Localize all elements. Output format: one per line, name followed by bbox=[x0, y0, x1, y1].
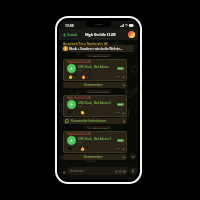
button[interactable]: Kommentare bbox=[63, 82, 127, 88]
button[interactable]: Sprachnachricht aufnehmen bbox=[129, 167, 137, 175]
staticText: 🔥 bbox=[81, 74, 86, 79]
staticText: 283 Abonnent:innen bbox=[91, 37, 111, 40]
button[interactable]: Anhang bbox=[60, 168, 67, 175]
staticText: LIVE-Stuck, Bad Advice bbox=[78, 65, 109, 69]
staticText: 2 bbox=[73, 147, 75, 150]
staticText: ❤️ bbox=[68, 110, 72, 115]
staticText: Zurück bbox=[67, 33, 78, 37]
staticText: NEU bbox=[118, 139, 123, 142]
staticText: High On Life CLUB bbox=[85, 32, 116, 37]
button[interactable]: ❤️ bbox=[67, 110, 76, 115]
button[interactable]: 👏 bbox=[79, 110, 89, 115]
staticText: Kommentare bbox=[84, 155, 103, 159]
staticText: Musik + Emotion = wie du die Welt sie... bbox=[69, 47, 123, 51]
staticText: 2 bbox=[73, 111, 75, 114]
staticText: NEU bbox=[118, 67, 123, 70]
button[interactable]: 👍 bbox=[79, 146, 89, 151]
button[interactable]: Musik + Emotion = wie du die Welt sie... bbox=[62, 45, 134, 52]
staticText: 31. Oktober 2023 bbox=[88, 126, 109, 129]
staticText: 17:08 bbox=[115, 75, 121, 78]
button[interactable]: Abspielen bbox=[67, 136, 76, 145]
staticText: 👏 bbox=[80, 110, 85, 115]
button[interactable]: High On Life CLUB bbox=[63, 59, 127, 81]
staticText: Kommentare bbox=[84, 83, 103, 87]
staticText: LIVE-Stuck, Bad Advice 2 bbox=[78, 101, 111, 105]
staticText: 2 bbox=[74, 75, 76, 78]
staticText: 0:42 bbox=[78, 141, 83, 144]
staticText: 0:42 bbox=[78, 69, 83, 72]
button[interactable]: High On Life CLUB bbox=[63, 131, 127, 153]
staticText: High On Life CLUB bbox=[67, 132, 91, 136]
button[interactable]: Broadcast bbox=[67, 167, 128, 175]
button[interactable]: Kommentare bbox=[63, 154, 127, 160]
staticText: 17:08 bbox=[115, 111, 121, 114]
staticText: 17:08 bbox=[115, 147, 121, 150]
button[interactable]: Abspielen bbox=[67, 64, 76, 73]
button[interactable]: 👍 bbox=[67, 74, 77, 79]
staticText: LIVE-Stuck, Bad Advice 3 bbox=[78, 137, 111, 141]
staticText: High On Life CLUB bbox=[67, 96, 91, 100]
staticText: 👍 bbox=[68, 74, 73, 79]
button[interactable]: Nach unten scrollen bbox=[129, 153, 136, 160]
button[interactable]: Abspielen bbox=[67, 100, 76, 109]
staticText: NEU bbox=[118, 103, 123, 106]
staticText: Angebot/Foto Nachricht #4 bbox=[63, 41, 108, 45]
staticText: Broadcast bbox=[70, 169, 84, 173]
button[interactable]: 🔥 bbox=[80, 74, 90, 79]
staticText: Kommentar hinterlassen bbox=[71, 119, 106, 123]
staticText: ❤️ bbox=[68, 146, 72, 151]
staticText: 31. Oktober 2023 bbox=[88, 90, 109, 93]
staticText: 17:08 bbox=[65, 23, 74, 28]
staticText: 0:42 bbox=[78, 105, 83, 108]
staticText: 31. Oktober 2023 bbox=[88, 54, 109, 57]
staticText: 👍 bbox=[80, 146, 85, 151]
button[interactable]: High On Life CLUB bbox=[63, 95, 127, 117]
staticText: High On Life CLUB bbox=[67, 60, 91, 64]
staticText: 1 bbox=[87, 75, 89, 78]
button[interactable]: Kommentar hinterlassen bbox=[63, 118, 127, 124]
button[interactable]: Zurück bbox=[62, 32, 79, 38]
staticText: 1 bbox=[86, 147, 88, 150]
button[interactable]: Profilbild bbox=[128, 31, 135, 38]
staticText: 1 bbox=[86, 111, 88, 114]
button[interactable]: ❤️ bbox=[67, 146, 76, 151]
